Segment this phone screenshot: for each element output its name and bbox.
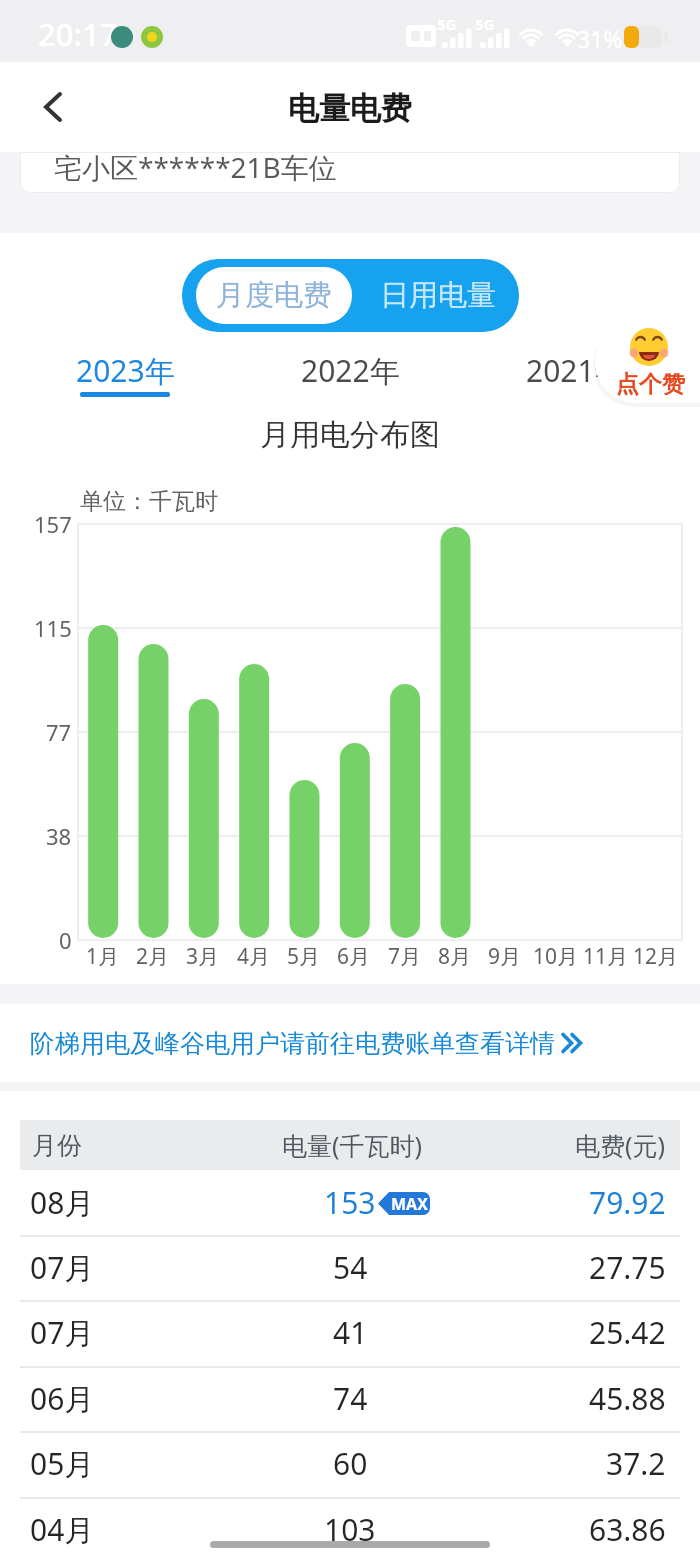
staticText: 04月 [30,1509,95,1550]
staticText: 7月 [388,942,422,971]
staticText: 27.75 [589,1247,666,1288]
staticText: 41 [333,1312,368,1353]
staticText: 37.2 [606,1443,666,1484]
staticText: 月份 [32,1130,82,1161]
staticText: 08月 [30,1182,95,1223]
staticText: 9月 [488,942,522,971]
staticText: 06月 [30,1378,95,1419]
staticText: 2023年 [76,350,175,390]
staticText: 4月 [237,942,271,971]
staticText: 77 [46,717,72,747]
button[interactable]: 2021年 [505,350,645,390]
staticText: 3月 [186,942,220,971]
button[interactable] [0,1300,700,1365]
staticText: 月度电费 [216,277,332,314]
button[interactable] [38,92,68,122]
staticText: 2021年 [526,350,625,390]
staticText: 20:17 [38,13,118,51]
button[interactable] [0,1170,700,1235]
staticText: 115 [34,613,72,643]
staticText: 点个赞 [616,370,685,398]
button[interactable] [0,1497,700,1555]
button[interactable]: 日用电量 [360,267,516,324]
staticText: 12月 [633,942,679,971]
staticText: 日用电量 [380,277,496,314]
staticText: 153 [324,1182,376,1223]
staticText: 63.86 [589,1509,666,1550]
staticText: 07月 [30,1247,95,1288]
staticText: 11月 [583,942,629,971]
staticText: 10月 [533,942,579,971]
staticText: 54 [333,1247,368,1288]
button[interactable]: 2022年 [280,350,420,390]
staticText: 157 [34,509,72,539]
button[interactable] [20,152,680,193]
staticText: 0 [59,925,72,955]
staticText: 6月 [337,942,371,971]
button[interactable] [595,321,700,403]
button[interactable] [196,267,352,324]
staticText: 5G [437,14,457,32]
staticText: 74 [333,1378,368,1419]
staticText: 38 [46,821,72,851]
staticText: 60 [333,1443,368,1484]
staticText: 05月 [30,1443,95,1484]
staticText: 5G [475,14,495,32]
button[interactable]: 2023年 [55,350,195,390]
staticText: 2022年 [301,350,400,390]
staticText: 单位：千瓦时 [80,487,218,516]
staticText: 电量电费 [288,89,412,128]
staticText: 阶梯用电及峰谷电用户请前往电费账单查看详情 [30,1028,555,1059]
staticText: 31% [577,23,623,53]
staticText: 电量(千瓦时) [282,1128,423,1162]
staticText: MAX [391,1193,428,1215]
staticText: 8月 [438,942,472,971]
staticText: 月用电分布图 [260,416,440,452]
button[interactable] [0,1431,700,1496]
staticText: 电费(元) [575,1128,666,1162]
staticText: 103 [324,1509,376,1550]
staticText: 5月 [287,942,321,971]
staticText: 1月 [86,942,120,971]
staticText: 79.92 [589,1182,666,1223]
staticText: 2月 [136,942,170,971]
button[interactable]: 阶梯用电及峰谷电用户请前往电费账单查看详情 [0,1004,700,1082]
button[interactable] [0,1366,700,1431]
button[interactable] [0,1235,700,1300]
staticText: 07月 [30,1312,95,1353]
staticText: 宅小区******21B车位 [54,148,337,184]
staticText: 45.88 [589,1378,666,1419]
staticText: 25.42 [589,1312,666,1353]
